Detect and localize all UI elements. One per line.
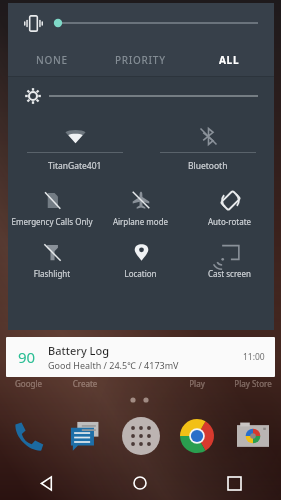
staticText: Location <box>96 268 185 279</box>
staticText: TitanGate401 <box>48 160 102 172</box>
button[interactable]: Back <box>0 466 93 500</box>
button[interactable]: Cast screen <box>185 235 274 287</box>
button[interactable]: Chrome <box>180 419 214 453</box>
button[interactable]: Brightness <box>22 85 44 107</box>
staticText: Play Store <box>225 378 281 389</box>
staticText: Battery Log <box>48 343 109 358</box>
button[interactable] <box>49 87 258 105</box>
staticText: Cast screen <box>185 268 274 279</box>
button[interactable]: Auto-rotate <box>185 183 274 235</box>
staticText: Auto-rotate <box>185 216 274 227</box>
staticText: Bluetooth <box>188 160 228 172</box>
staticText: Google <box>0 378 57 389</box>
staticText: Airplane mode <box>96 216 185 227</box>
staticText: ALL <box>219 53 240 67</box>
staticText: Good Health / 24.5℃ / 4173mV <box>48 359 179 371</box>
button[interactable]: Apps <box>122 417 160 455</box>
button[interactable]: Location <box>96 235 185 287</box>
staticText: PRIORITY <box>115 53 166 67</box>
button[interactable]: Flashlight <box>8 235 96 287</box>
button[interactable]: Recents <box>187 466 281 500</box>
staticText: Create <box>57 378 113 389</box>
button[interactable]: Camera <box>237 420 269 452</box>
staticText: NONE <box>36 53 68 67</box>
staticText: Emergency Calls Only <box>8 216 96 227</box>
button[interactable] <box>54 12 258 34</box>
button[interactable]: Emergency Calls Only <box>8 183 96 235</box>
button[interactable]: 90 <box>6 337 275 377</box>
button[interactable]: Messages <box>69 420 101 452</box>
button[interactable]: NONE <box>8 43 96 76</box>
button[interactable]: Airplane mode <box>96 183 185 235</box>
button[interactable]: ALL <box>185 43 274 76</box>
staticText <box>113 378 169 389</box>
button[interactable]: Bluetooth <box>141 115 274 179</box>
staticText: Flashlight <box>8 268 96 279</box>
button[interactable]: Ringer mode <box>20 10 46 36</box>
button[interactable]: PRIORITY <box>96 43 185 76</box>
staticText: 90 <box>18 347 36 367</box>
staticText: Play <box>169 378 225 389</box>
button[interactable]: Home <box>93 466 187 500</box>
button[interactable]: TitanGate401 <box>8 115 141 179</box>
staticText: 11:00 <box>243 351 265 363</box>
button[interactable]: Phone <box>12 419 46 453</box>
